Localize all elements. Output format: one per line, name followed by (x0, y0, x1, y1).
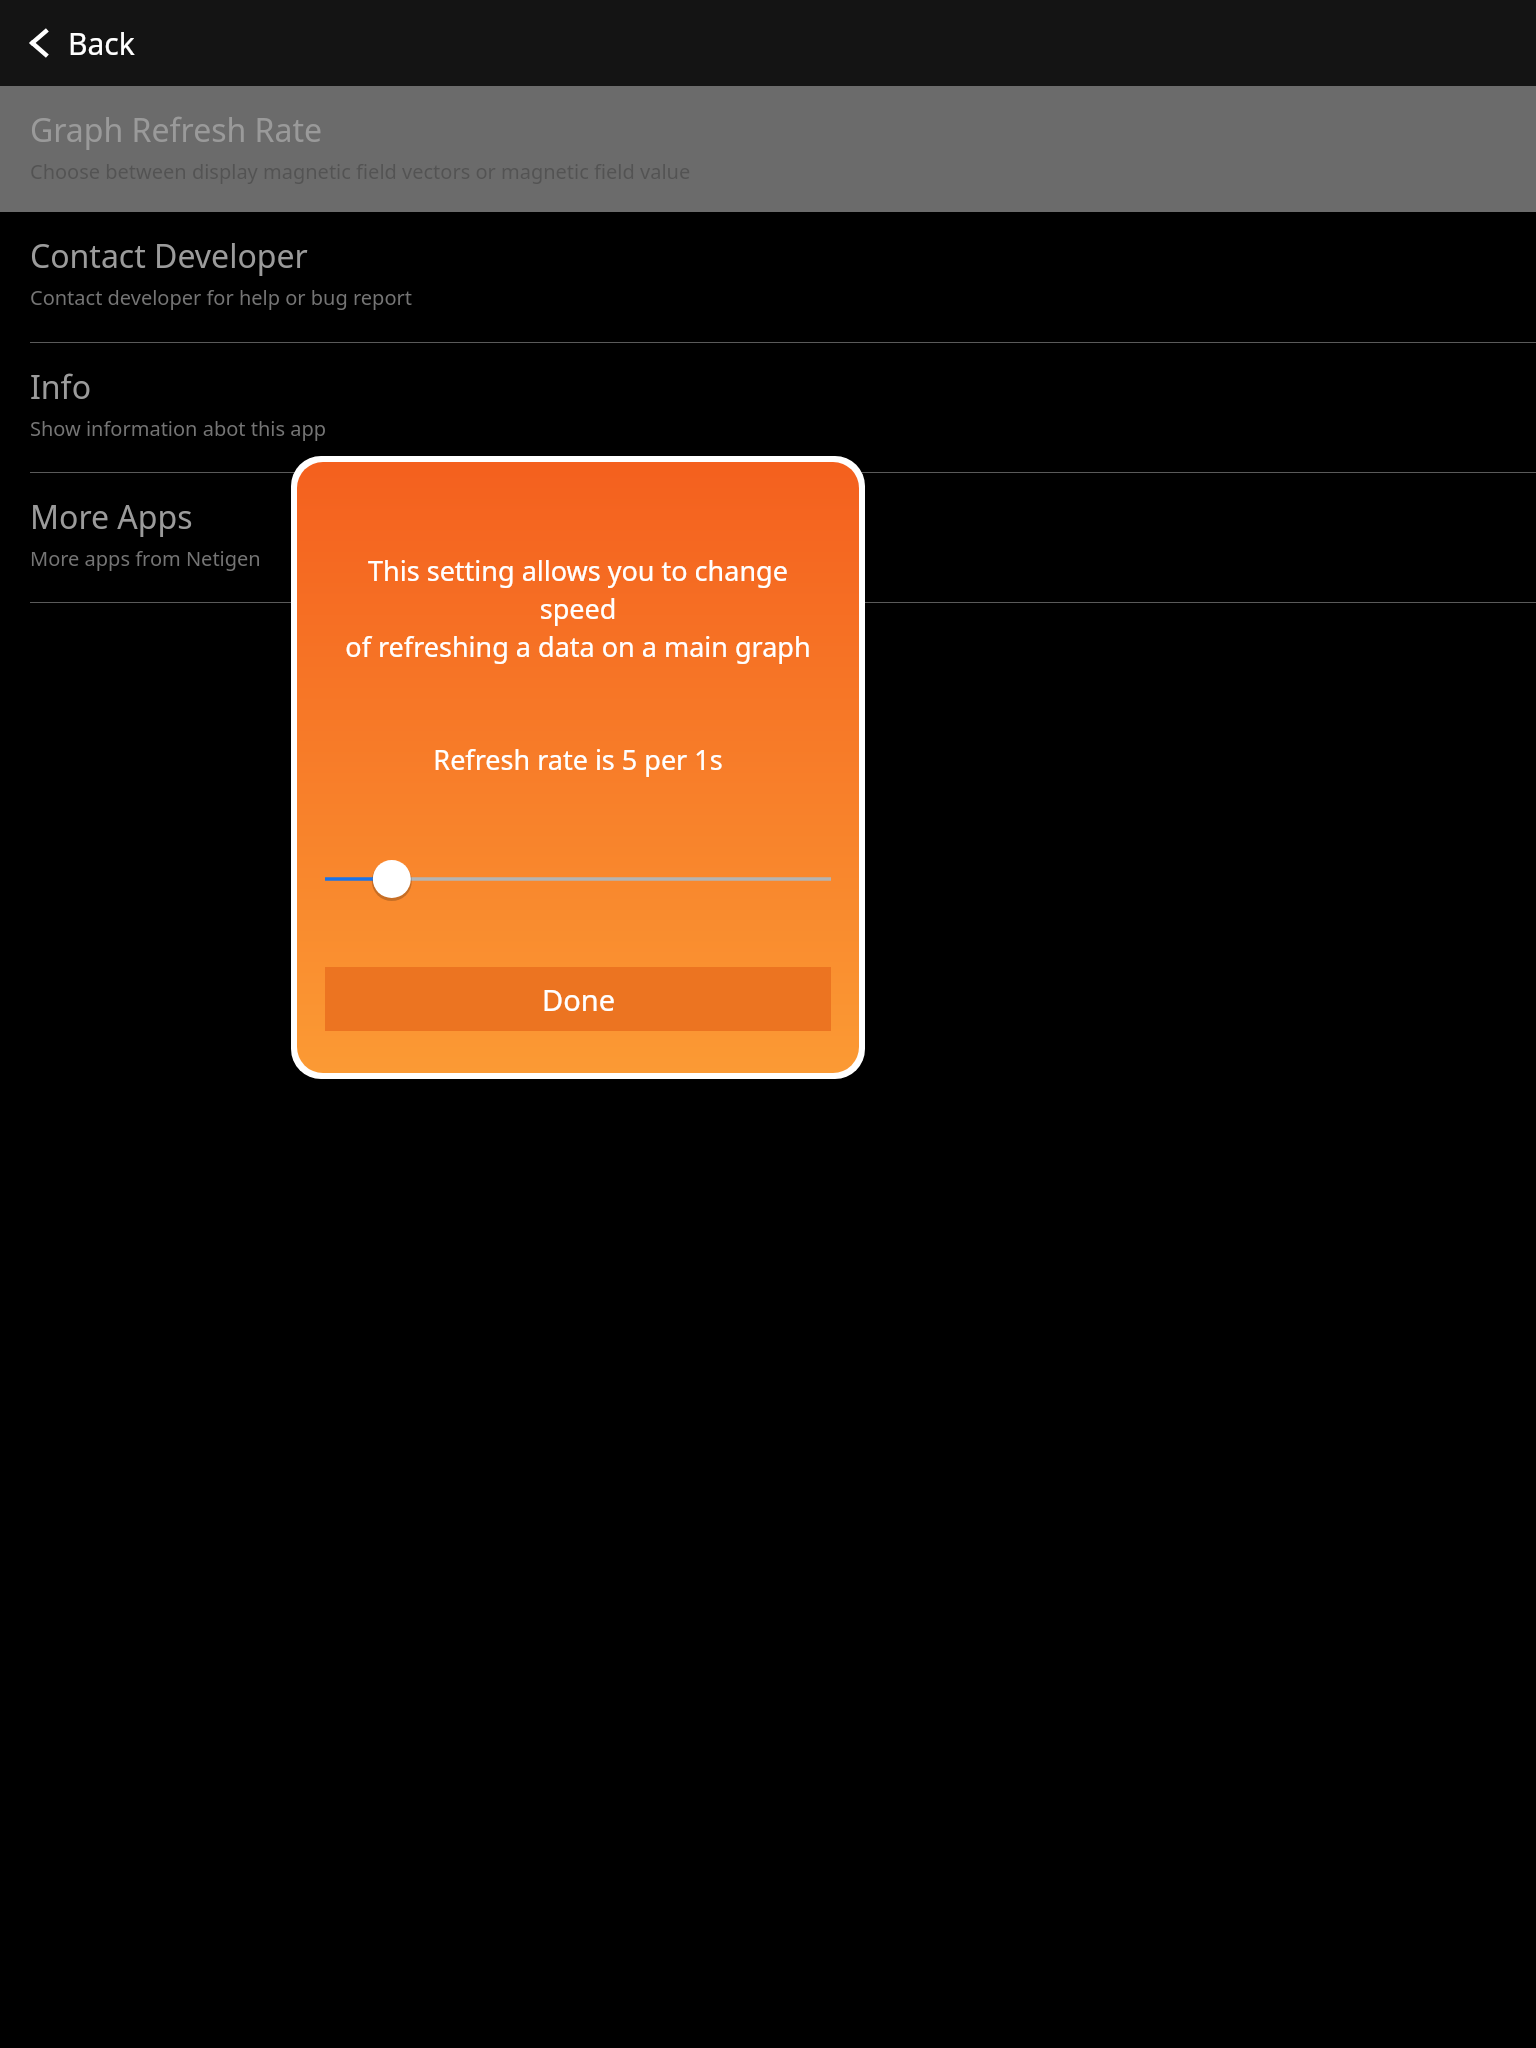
button[interactable]: Back (0, 0, 1536, 86)
staticText: Choose between display magnetic field ve… (30, 158, 691, 185)
button[interactable]: More Apps (0, 473, 1536, 603)
staticText: Done (542, 980, 615, 1019)
staticText: More apps from Netigen (30, 545, 261, 572)
button[interactable] (325, 850, 831, 908)
staticText: Back (68, 23, 135, 64)
staticText: More Apps (30, 495, 193, 539)
staticText: This setting allows you to change speed … (327, 552, 829, 665)
button[interactable]: Contact Developer (0, 212, 1536, 343)
staticText: Contact Developer (30, 234, 308, 278)
staticText: Refresh rate is 5 per 1s (297, 741, 859, 778)
other: Back (18, 22, 60, 64)
button[interactable]: Graph Refresh Rate (0, 86, 1536, 212)
staticText: Info (30, 365, 91, 409)
staticText: Graph Refresh Rate (30, 108, 323, 152)
staticText: Contact developer for help or bug report (30, 284, 412, 311)
button[interactable]: Done (325, 967, 831, 1031)
staticText: Show information abot this app (30, 415, 327, 442)
button[interactable]: Info (0, 343, 1536, 473)
